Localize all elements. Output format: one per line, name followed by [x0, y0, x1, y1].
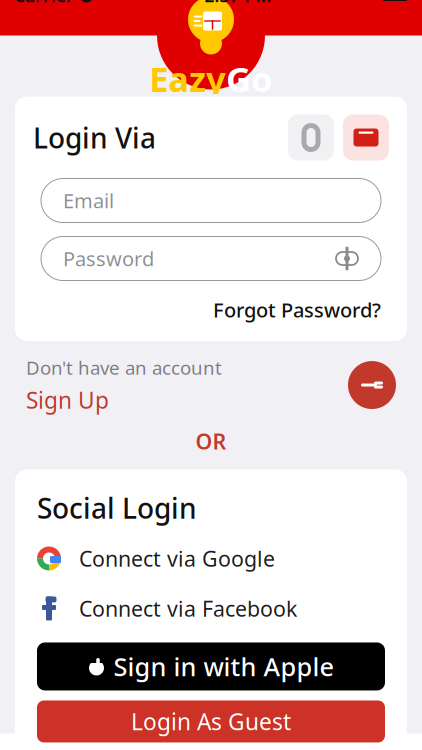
button[interactable]: Sign Up — [26, 385, 109, 415]
staticText: Connect via Facebook — [79, 594, 297, 623]
staticText: Sign in with Apple — [113, 650, 334, 683]
staticText: Don't have an account — [26, 355, 222, 380]
staticText: 2:37 PM — [204, 0, 271, 7]
button[interactable]: Forgot Password? — [213, 296, 381, 323]
staticText: OR — [195, 427, 226, 455]
button[interactable]: Login via email — [343, 114, 389, 160]
staticText: Forgot Password? — [213, 296, 381, 323]
button[interactable]: Email — [41, 178, 381, 222]
staticText: Eazy — [149, 55, 226, 101]
staticText: Login As Guest — [131, 706, 291, 736]
button[interactable]: Login via phone — [288, 114, 334, 160]
staticText: Sign Up — [26, 385, 109, 415]
staticText: Password — [63, 245, 154, 272]
button[interactable]: Password — [41, 236, 381, 280]
staticText: Connect via Google — [79, 544, 275, 573]
staticText: Go — [226, 55, 273, 101]
button[interactable]: Sign in with Apple — [37, 642, 385, 690]
button[interactable]: Login As Guest — [37, 700, 385, 742]
staticText: Login Via — [33, 119, 156, 156]
button[interactable]: Connect via Facebook — [15, 586, 407, 630]
staticText: Social Login — [37, 489, 197, 526]
staticText: Email — [63, 187, 114, 214]
staticText: Carrier — [14, 0, 74, 7]
button[interactable]: Continue — [348, 361, 396, 409]
button[interactable]: Connect via Google — [15, 536, 407, 580]
